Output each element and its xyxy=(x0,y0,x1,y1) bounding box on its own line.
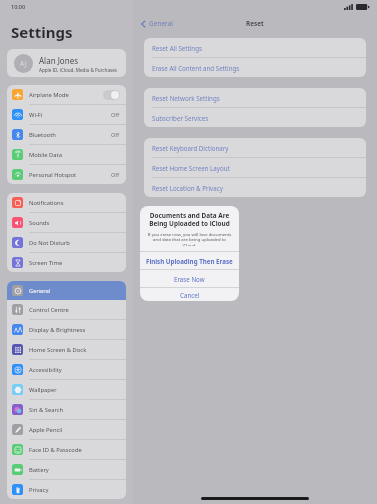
button[interactable]: Reset Keyboard Dictionary xyxy=(144,138,366,157)
staticText: Display & Brightness xyxy=(29,326,86,334)
staticText: Reset Location & Privacy xyxy=(152,184,223,192)
staticText: Off xyxy=(111,131,120,139)
staticText: Notifications xyxy=(29,199,64,207)
staticText: Wallpaper xyxy=(29,386,57,394)
staticText: General xyxy=(149,19,173,28)
button[interactable]: Personal Hotspot xyxy=(7,165,126,184)
button[interactable]: Apple Pencil xyxy=(7,420,126,439)
staticText: Apple Pencil xyxy=(29,426,63,434)
button[interactable]: Erase All Content and Settings xyxy=(144,58,366,77)
button[interactable]: Erase Now xyxy=(140,270,239,287)
staticText: Subscriber Services xyxy=(152,114,209,122)
staticText: Home Screen & Dock xyxy=(29,346,87,354)
staticText: Documents and Data Are Being Uploaded to… xyxy=(149,211,230,228)
button[interactable]: Airplane Mode xyxy=(7,85,126,104)
button[interactable]: Finish Uploading Then Erase xyxy=(140,252,239,269)
button[interactable]: Notifications xyxy=(7,193,126,212)
staticText: Mobile Data xyxy=(29,151,62,159)
button[interactable]: Reset Location & Privacy xyxy=(144,178,366,197)
staticText: Off xyxy=(111,111,120,119)
staticText: Control Centre xyxy=(29,306,69,314)
staticText: Alan Jones xyxy=(39,55,78,66)
button[interactable]: Cancel xyxy=(140,288,239,301)
staticText: General xyxy=(29,287,51,295)
staticText: Siri & Search xyxy=(29,406,64,414)
button[interactable]: Mobile Data xyxy=(7,145,126,164)
staticText: Off xyxy=(111,171,120,179)
button[interactable]: Sounds xyxy=(7,213,126,232)
button[interactable]: Screen Time xyxy=(7,253,126,272)
button[interactable]: Reset All Settings xyxy=(144,38,366,57)
button[interactable]: Airplane Mode toggle xyxy=(103,90,120,100)
button[interactable]: Do Not Disturb xyxy=(7,233,126,252)
button[interactable]: General xyxy=(141,19,173,28)
staticText: Face ID & Passcode xyxy=(29,446,82,454)
staticText: Erase Now xyxy=(174,275,205,283)
button[interactable]: Subscriber Services xyxy=(144,108,366,127)
button[interactable]: Wi-Fi xyxy=(7,105,126,124)
staticText: Finish Uploading Then Erase xyxy=(146,257,233,265)
staticText: Reset All Settings xyxy=(152,44,202,52)
staticText: Cancel xyxy=(180,291,200,299)
button[interactable]: Display & Brightness xyxy=(7,320,126,339)
staticText: If you erase now, you will lose document… xyxy=(147,231,232,246)
staticText: Airplane Mode xyxy=(29,91,69,99)
button[interactable]: General xyxy=(7,281,126,300)
button[interactable]: Privacy xyxy=(7,480,126,499)
staticText: AJ xyxy=(20,59,27,68)
button[interactable]: Face ID & Passcode xyxy=(7,440,126,459)
button[interactable]: Battery xyxy=(7,460,126,479)
button[interactable]: Home Screen & Dock xyxy=(7,340,126,359)
button[interactable]: Siri & Search xyxy=(7,400,126,419)
staticText: Wi-Fi xyxy=(29,111,43,119)
staticText: Reset Network Settings xyxy=(152,94,220,102)
staticText: Accessibility xyxy=(29,366,62,374)
staticText: Privacy xyxy=(29,486,49,494)
button[interactable]: Wallpaper xyxy=(7,380,126,399)
staticText: Reset Home Screen Layout xyxy=(152,164,230,172)
button[interactable]: Reset Home Screen Layout xyxy=(144,158,366,177)
button[interactable]: AJ xyxy=(7,49,126,77)
button[interactable]: Reset Network Settings xyxy=(144,88,366,107)
staticText: Sounds xyxy=(29,219,50,227)
button[interactable]: Accessibility xyxy=(7,360,126,379)
staticText: Bluetooth xyxy=(29,131,56,139)
button[interactable]: Bluetooth xyxy=(7,125,126,144)
staticText: Do Not Disturb xyxy=(29,239,70,247)
staticText: Reset Keyboard Dictionary xyxy=(152,144,229,152)
staticText: Settings xyxy=(11,22,73,42)
staticText: Erase All Content and Settings xyxy=(152,64,240,72)
staticText: 10:00 xyxy=(11,3,26,10)
staticText: Battery xyxy=(29,466,49,474)
staticText: Screen Time xyxy=(29,259,63,267)
staticText: Apple ID, iCloud, Media & Purchases xyxy=(39,67,117,73)
button[interactable]: Control Centre xyxy=(7,300,126,319)
staticText: Reset xyxy=(246,19,264,28)
staticText: Personal Hotspot xyxy=(29,171,77,179)
